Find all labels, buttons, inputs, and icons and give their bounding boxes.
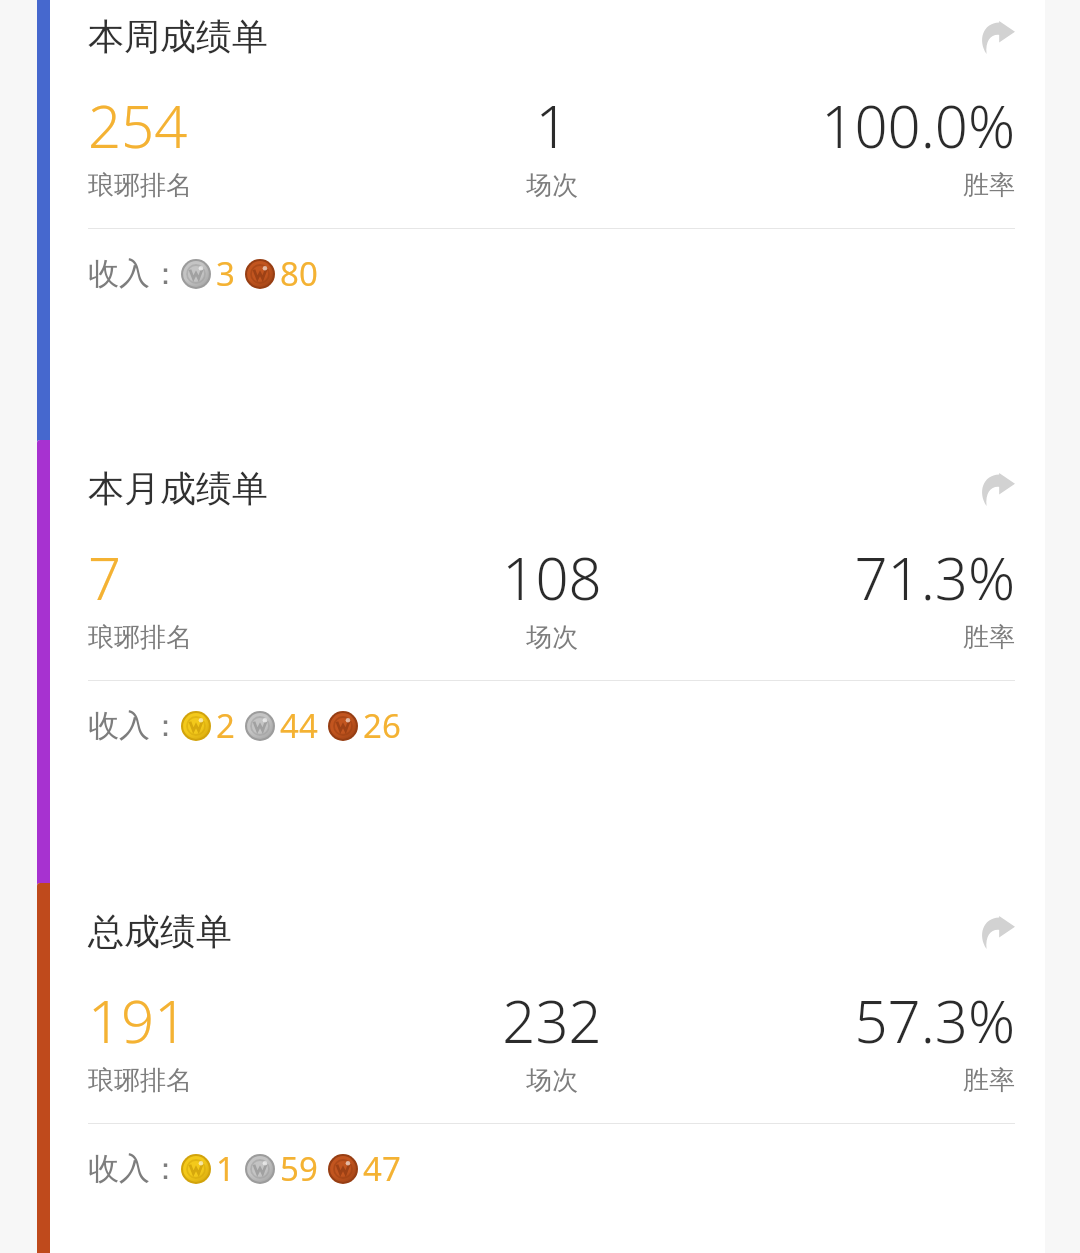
staticText: 100.0% bbox=[821, 86, 1015, 165]
staticText: 2 bbox=[216, 703, 235, 748]
staticText: 胜率 bbox=[963, 169, 1015, 202]
staticText: 琅琊排名 bbox=[88, 1064, 192, 1097]
button[interactable]: 总成绩单 bbox=[37, 883, 1045, 1253]
staticText: 收入： bbox=[88, 254, 181, 293]
staticText: 场次 bbox=[526, 169, 578, 202]
staticText: 1 bbox=[535, 86, 569, 165]
staticText: 59 bbox=[280, 1146, 318, 1191]
staticText: 3 bbox=[216, 251, 235, 296]
staticText: 80 bbox=[280, 251, 318, 296]
button[interactable]: Share bbox=[969, 903, 1025, 959]
staticText: 收入： bbox=[88, 1149, 181, 1188]
staticText: 本周成绩单 bbox=[88, 14, 969, 59]
staticText: 71.3% bbox=[854, 538, 1015, 617]
staticText: 1 bbox=[216, 1146, 235, 1191]
staticText: 26 bbox=[363, 703, 401, 748]
staticText: 44 bbox=[280, 703, 318, 748]
staticText: 琅琊排名 bbox=[88, 169, 192, 202]
staticText: 57.3% bbox=[854, 981, 1015, 1060]
staticText: 254 bbox=[88, 86, 188, 165]
staticText: 191 bbox=[88, 981, 188, 1060]
staticText: 琅琊排名 bbox=[88, 621, 192, 654]
staticText: 47 bbox=[363, 1146, 401, 1191]
staticText: 场次 bbox=[526, 621, 578, 654]
button[interactable]: 本月成绩单 bbox=[37, 440, 1045, 1253]
staticText: 232 bbox=[502, 981, 602, 1060]
staticText: 108 bbox=[502, 538, 602, 617]
staticText: 本月成绩单 bbox=[88, 466, 969, 511]
staticText: 胜率 bbox=[963, 1064, 1015, 1097]
staticText: 7 bbox=[88, 538, 122, 617]
staticText: 收入： bbox=[88, 706, 181, 745]
staticText: 胜率 bbox=[963, 621, 1015, 654]
button[interactable]: Share bbox=[969, 460, 1025, 516]
button[interactable]: Share bbox=[969, 8, 1025, 64]
staticText: 总成绩单 bbox=[88, 909, 969, 954]
staticText: 场次 bbox=[526, 1064, 578, 1097]
button[interactable]: 本周成绩单 bbox=[37, 0, 1045, 1241]
